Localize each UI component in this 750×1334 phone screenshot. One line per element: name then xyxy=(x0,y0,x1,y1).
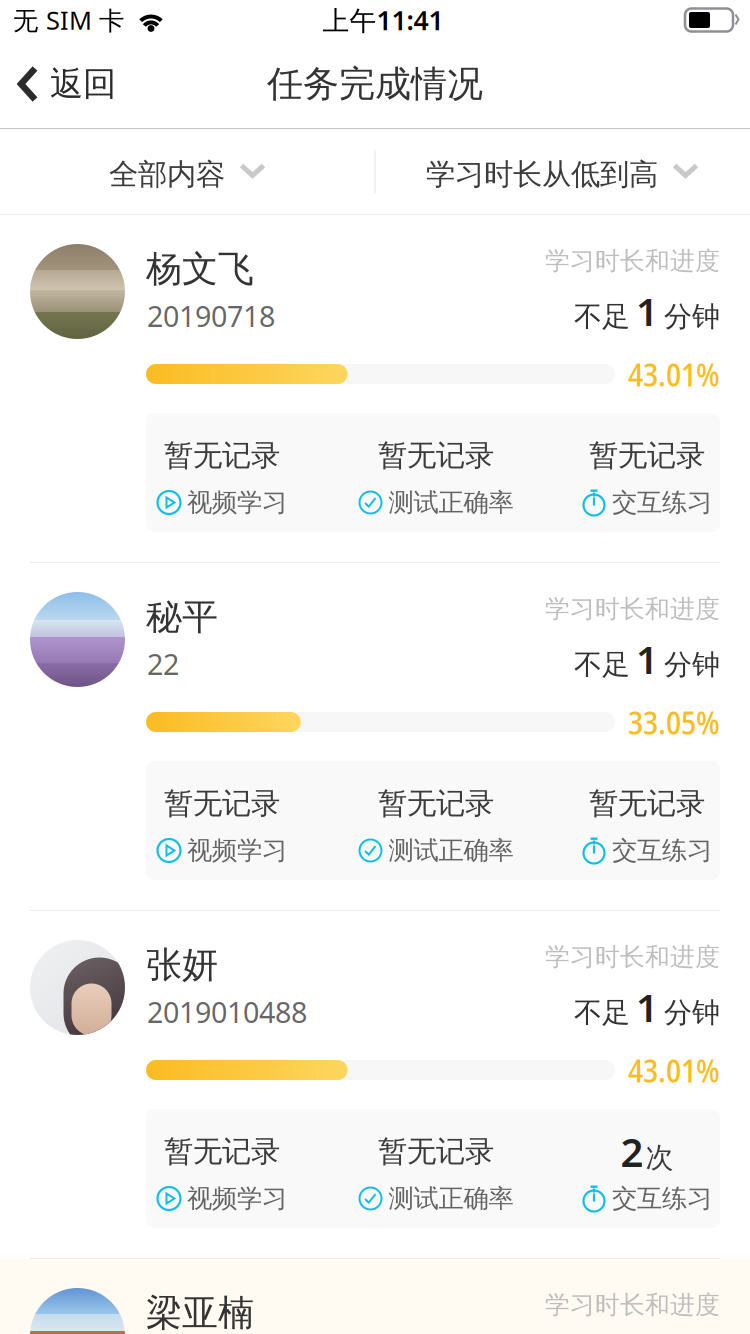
staticText: 学习时长和进度 xyxy=(545,245,720,277)
button[interactable]: 全部内容 xyxy=(0,129,375,214)
staticText: 暂无记录 xyxy=(164,437,280,473)
staticText: 全部内容 xyxy=(109,156,225,192)
staticText: 学习时长和进度 xyxy=(545,1289,720,1321)
staticText: 1 xyxy=(636,981,658,1033)
staticText: 视频学习 xyxy=(187,1183,287,1214)
button[interactable]: 张妍 xyxy=(0,911,750,1258)
staticText: 无 SIM 卡 xyxy=(13,3,124,37)
staticText: 测试正确率 xyxy=(388,1183,513,1214)
staticText: 不足 xyxy=(574,995,630,1030)
button[interactable]: 秘平 xyxy=(0,563,750,910)
staticText: 视频学习 xyxy=(187,487,287,518)
staticText: 返回 xyxy=(50,63,116,104)
staticText: 梁亚楠 xyxy=(146,1291,254,1334)
staticText: 分钟 xyxy=(664,995,720,1030)
staticText: 33.05% xyxy=(628,700,720,744)
staticText: 秘平 xyxy=(146,595,218,639)
staticText: 2 xyxy=(620,1125,643,1178)
staticText: 暂无记录 xyxy=(164,785,280,821)
staticText: 学习时长从低到高 xyxy=(426,156,658,192)
button[interactable]: 梁亚楠 xyxy=(0,1259,750,1334)
staticText: 43.01% xyxy=(628,352,720,396)
staticText: 学习时长和进度 xyxy=(545,593,720,625)
staticText: 视频学习 xyxy=(187,835,287,866)
staticText: 张妍 xyxy=(146,943,218,987)
staticText: 学习时长和进度 xyxy=(545,941,720,973)
staticText: 交互练习 xyxy=(612,487,712,518)
staticText: 1 xyxy=(636,285,658,337)
button[interactable]: 学习时长从低到高 xyxy=(375,129,750,214)
staticText: 暂无记录 xyxy=(378,1133,494,1169)
staticText: 不足 xyxy=(574,299,630,334)
staticText: 22 xyxy=(147,644,179,683)
button[interactable]: 返回 xyxy=(0,40,132,127)
staticText: 次 xyxy=(645,1140,673,1175)
staticText: 43.01% xyxy=(628,1048,720,1092)
staticText: 1 xyxy=(636,633,658,685)
staticText: 暂无记录 xyxy=(378,437,494,473)
staticText: 上午11:41 xyxy=(322,2,443,38)
staticText: 暂无记录 xyxy=(378,785,494,821)
staticText: 交互练习 xyxy=(612,1183,712,1214)
staticText: 暂无记录 xyxy=(589,437,705,473)
staticText: 测试正确率 xyxy=(388,835,513,866)
staticText: 分钟 xyxy=(664,299,720,334)
staticText: 20190718 xyxy=(147,296,275,335)
button[interactable]: 杨文飞 xyxy=(0,215,750,562)
staticText: 2019010488 xyxy=(147,992,307,1031)
staticText: 暂无记录 xyxy=(164,1133,280,1169)
staticText: 任务完成情况 xyxy=(267,62,483,106)
staticText: 交互练习 xyxy=(612,835,712,866)
staticText: 杨文飞 xyxy=(146,247,254,291)
staticText: 分钟 xyxy=(664,647,720,682)
staticText: 暂无记录 xyxy=(589,785,705,821)
staticText: 不足 xyxy=(574,647,630,682)
staticText: 测试正确率 xyxy=(388,487,513,518)
